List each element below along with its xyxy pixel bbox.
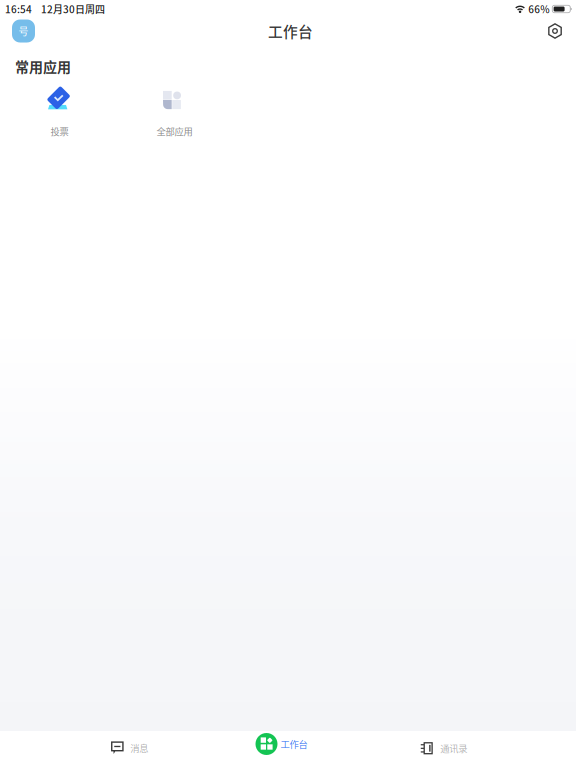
staticText: 号 <box>18 24 28 38</box>
staticText: 12月30日周四 <box>41 2 105 16</box>
staticText: 66% <box>528 2 549 16</box>
staticText: 常用应用 <box>15 56 71 76</box>
button[interactable]: 消息 <box>50 731 209 768</box>
staticText: 工作台 <box>268 20 313 42</box>
staticText: 全部应用 <box>156 124 192 138</box>
button[interactable]: 通讯录 <box>367 731 526 768</box>
button[interactable]: Account <box>12 19 35 42</box>
staticText: 工作台 <box>280 737 307 751</box>
staticText: 16:54 <box>5 2 32 16</box>
button[interactable]: 投票 <box>0 79 115 141</box>
button[interactable]: Settings <box>546 19 564 42</box>
button[interactable]: 工作台 <box>209 731 367 768</box>
staticText: 投票 <box>50 124 68 138</box>
button[interactable]: 全部应用 <box>115 79 230 141</box>
staticText: 通讯录 <box>440 741 467 755</box>
staticText: 消息 <box>130 741 148 755</box>
